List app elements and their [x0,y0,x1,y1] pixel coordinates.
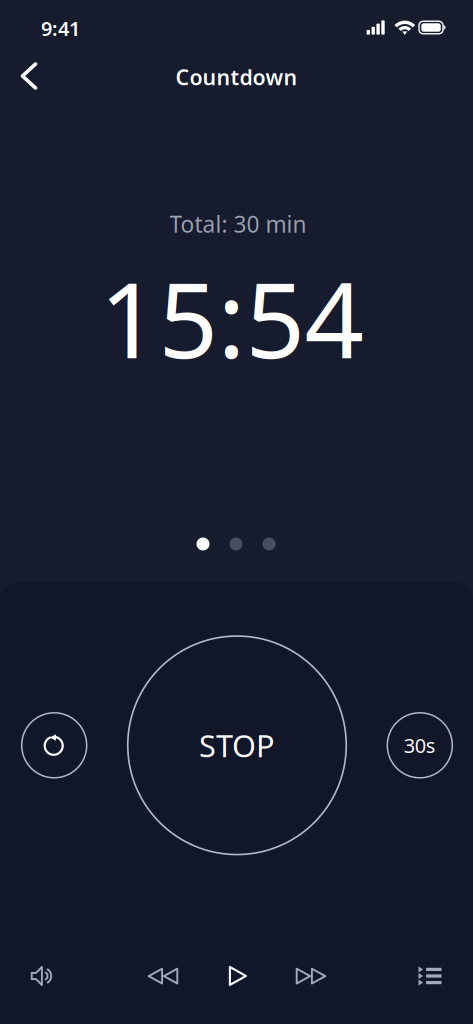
staticText: 9:41 [41,15,80,41]
staticText: Total: 30 min [169,209,306,239]
staticText: Countdown [175,63,297,91]
button[interactable]: Play [212,954,264,998]
button[interactable]: STOP [128,636,346,854]
button[interactable]: Fast forward [285,954,337,998]
button[interactable]: Sound [17,954,69,998]
staticText: 15:54 [99,249,363,387]
staticText: STOP [199,725,275,766]
button[interactable]: Queue [404,954,456,998]
button[interactable]: Rewind [137,954,189,998]
button[interactable]: Restart [22,713,87,778]
button[interactable]: 30s [387,713,452,778]
staticText: 30s [404,732,436,759]
button[interactable]: Back [6,53,52,99]
